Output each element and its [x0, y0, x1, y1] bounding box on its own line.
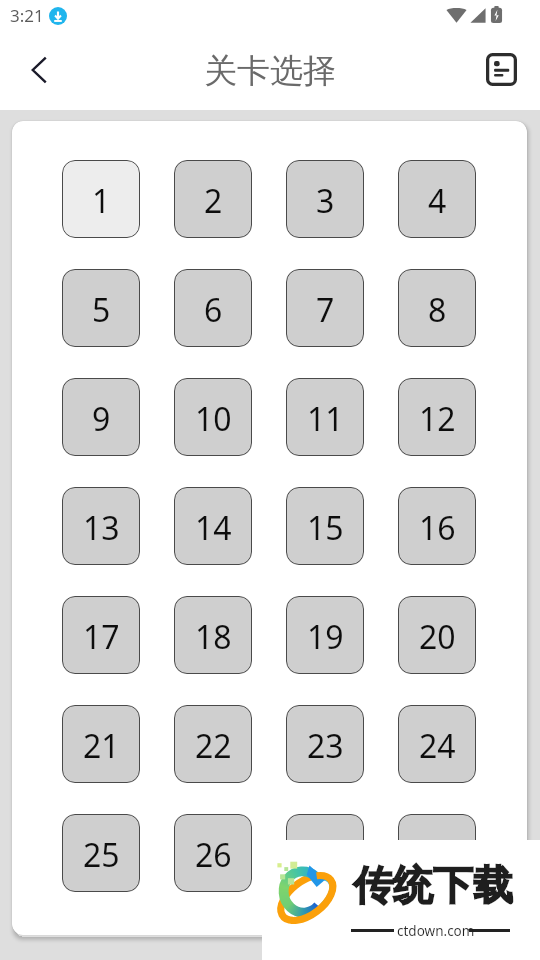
- staticText: 10: [195, 397, 232, 441]
- staticText: 3:21: [10, 4, 44, 27]
- staticText: 关卡选择: [204, 50, 336, 92]
- button[interactable]: 8: [398, 269, 476, 347]
- staticText: 1: [92, 179, 111, 223]
- button[interactable]: 20: [398, 596, 476, 674]
- button[interactable]: 9: [62, 378, 140, 456]
- staticText: 18: [195, 615, 232, 659]
- button[interactable]: 4: [398, 160, 476, 238]
- staticText: 9: [92, 397, 111, 441]
- staticText: ctdown.com: [397, 922, 475, 940]
- button[interactable]: 1: [62, 160, 140, 238]
- staticText: 27: [307, 833, 344, 877]
- button[interactable]: 12: [398, 378, 476, 456]
- staticText: 22: [195, 724, 232, 768]
- button[interactable]: 3: [286, 160, 364, 238]
- button[interactable]: 22: [174, 705, 252, 783]
- staticText: 14: [195, 506, 232, 550]
- staticText: 26: [195, 833, 232, 877]
- staticText: 23: [307, 724, 344, 768]
- staticText: 传统下载: [353, 860, 513, 910]
- button[interactable]: 21: [62, 705, 140, 783]
- button[interactable]: 23: [286, 705, 364, 783]
- staticText: 2: [204, 179, 223, 223]
- button[interactable]: 17: [62, 596, 140, 674]
- staticText: 19: [307, 615, 344, 659]
- staticText: 5: [92, 288, 111, 332]
- staticText: 16: [419, 506, 456, 550]
- button[interactable]: 24: [398, 705, 476, 783]
- button[interactable]: 25: [62, 814, 140, 892]
- staticText: 20: [419, 615, 456, 659]
- staticText: 25: [83, 833, 120, 877]
- button[interactable]: 27: [286, 814, 364, 892]
- staticText: 7: [316, 288, 335, 332]
- staticText: 28: [419, 833, 456, 877]
- button[interactable]: 2: [174, 160, 252, 238]
- staticText: 4: [428, 179, 447, 223]
- staticText: 12: [419, 397, 456, 441]
- staticText: 17: [83, 615, 120, 659]
- button[interactable]: 7: [286, 269, 364, 347]
- button[interactable]: 15: [286, 487, 364, 565]
- button[interactable]: 14: [174, 487, 252, 565]
- button[interactable]: 18: [174, 596, 252, 674]
- button[interactable]: 26: [174, 814, 252, 892]
- button[interactable]: 5: [62, 269, 140, 347]
- staticText: 24: [419, 724, 456, 768]
- button[interactable]: 13: [62, 487, 140, 565]
- staticText: 21: [83, 724, 120, 768]
- button[interactable]: 11: [286, 378, 364, 456]
- button[interactable]: 16: [398, 487, 476, 565]
- staticText: 15: [307, 506, 344, 550]
- staticText: 6: [204, 288, 223, 332]
- staticText: 8: [428, 288, 447, 332]
- staticText: 3: [316, 179, 335, 223]
- button[interactable]: 19: [286, 596, 364, 674]
- button[interactable]: 28: [398, 814, 476, 892]
- button[interactable]: Level details: [477, 49, 525, 97]
- button[interactable]: 6: [174, 269, 252, 347]
- staticText: 13: [83, 506, 120, 550]
- staticText: 11: [307, 397, 344, 441]
- button[interactable]: 10: [174, 378, 252, 456]
- button[interactable]: Back: [11, 45, 67, 101]
